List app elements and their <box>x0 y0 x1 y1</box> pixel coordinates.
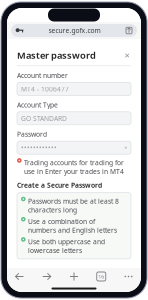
staticText: MT4 - 1006477 <box>21 84 69 93</box>
button[interactable]: Forward <box>42 272 51 280</box>
staticText: GO STANDARD <box>21 114 67 123</box>
button[interactable]: Tabs <box>97 272 106 281</box>
button[interactable]: New Tab <box>69 272 78 281</box>
staticText: Use both uppercase and lowercase letters <box>28 237 105 255</box>
button[interactable]: Back <box>15 272 24 280</box>
staticText: Use a combination of numbers and English… <box>28 217 117 235</box>
staticText: × <box>124 49 129 61</box>
staticText: Account Type <box>17 100 58 109</box>
staticText: Create a Secure Password <box>17 181 102 190</box>
staticText: secure.gofx.com <box>48 26 100 35</box>
staticText: Trading accounts for trading for use in … <box>24 158 124 176</box>
staticText: Password <box>17 130 47 139</box>
staticText: Passwords must be at least 8 characters … <box>28 197 119 214</box>
staticText: Master password <box>17 49 96 61</box>
staticText: 16 <box>98 273 104 280</box>
button[interactable]: Close <box>123 51 131 59</box>
button[interactable]: More <box>124 272 133 281</box>
staticText: •••••••••••• <box>21 143 57 152</box>
staticText: Account number <box>17 71 68 80</box>
